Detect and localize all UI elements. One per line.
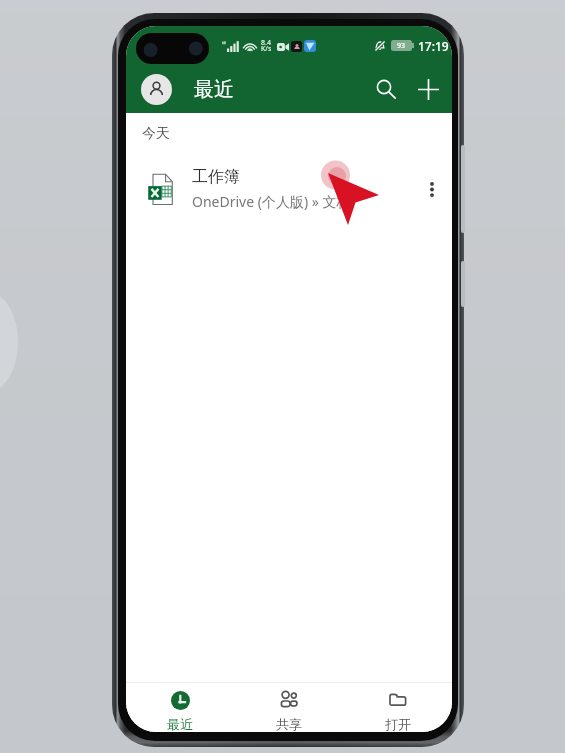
- button[interactable]: Account: [141, 74, 172, 105]
- staticText: 打开: [385, 716, 411, 732]
- button[interactable]: More options: [412, 169, 452, 209]
- staticText: K/s: [261, 44, 272, 54]
- staticText: 最近: [167, 716, 193, 732]
- staticText: 17:19: [418, 38, 449, 53]
- staticText: 最近: [194, 77, 234, 102]
- button[interactable]: Add: [408, 69, 448, 109]
- button[interactable]: 打开: [343, 683, 452, 732]
- staticText: 今天: [142, 125, 170, 143]
- staticText: 8.4: [261, 38, 271, 48]
- button[interactable]: 共享: [234, 683, 343, 732]
- staticText: 共享: [276, 716, 302, 732]
- button[interactable]: 工作簿: [126, 161, 452, 217]
- staticText: OneDrive (个人版) » 文档: [192, 192, 351, 211]
- staticText: 93: [397, 41, 406, 51]
- button[interactable]: Search: [366, 69, 406, 109]
- button[interactable]: 最近: [126, 683, 234, 732]
- staticText: 工作簿: [192, 167, 240, 187]
